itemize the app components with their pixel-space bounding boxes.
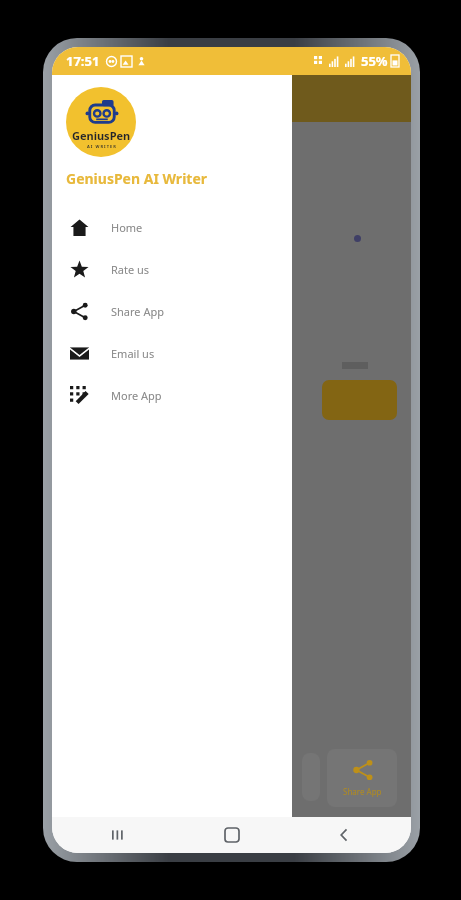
button[interactable]: Email us [52,332,292,374]
staticText: Email us [111,346,155,361]
button[interactable]: Home [215,818,249,852]
button[interactable]: More App [52,374,292,416]
staticText: 17:51 [66,52,100,70]
staticText: Rate us [111,262,150,277]
button[interactable]: Home [52,206,292,248]
button[interactable]: Rate us [52,248,292,290]
button[interactable]: Recents [102,818,136,852]
staticText: More App [111,388,162,403]
staticText: GeniusPen AI Writer [66,169,208,188]
staticText: GeniusPen [72,128,131,143]
button[interactable]: Back [327,818,361,852]
button[interactable]: Share App [327,749,397,807]
staticText: A I W R I T E R [87,144,116,149]
button[interactable]: Share App [52,290,292,332]
staticText: 55% [361,52,388,70]
staticText: Home [111,220,143,235]
staticText: Share App [343,786,382,797]
staticText: Share App [111,304,164,319]
